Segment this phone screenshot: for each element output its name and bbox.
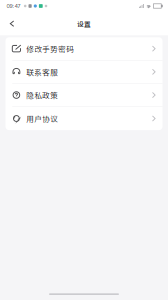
staticText: 用户协议 xyxy=(26,113,58,124)
staticText: 09:47 xyxy=(6,3,20,9)
button[interactable]: 用户协议 xyxy=(5,107,162,130)
button[interactable]: 修改手势密码 xyxy=(5,37,162,60)
staticText: 隐私政策 xyxy=(26,89,58,100)
button[interactable]: Back xyxy=(0,15,22,32)
staticText: 修改手势密码 xyxy=(26,43,74,54)
staticText: 联系客服 xyxy=(26,66,58,77)
button[interactable]: 联系客服 xyxy=(5,60,162,84)
staticText: 设置 xyxy=(77,19,91,28)
button[interactable]: 隐私政策 xyxy=(5,84,162,107)
